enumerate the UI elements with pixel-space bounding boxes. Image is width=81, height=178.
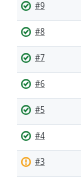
staticText: #6: [35, 78, 45, 89]
staticText: #7: [35, 52, 45, 63]
button[interactable]: #9: [0, 0, 81, 21]
staticText: #5: [35, 104, 45, 115]
button[interactable]: #6: [0, 73, 81, 99]
button[interactable]: #4: [0, 125, 81, 151]
staticText: #3: [35, 156, 45, 167]
staticText: #8: [35, 26, 45, 37]
button[interactable]: #5: [0, 99, 81, 125]
button[interactable]: #3: [0, 151, 81, 177]
button[interactable]: #7: [0, 47, 81, 73]
staticText: #9: [35, 0, 45, 11]
button[interactable]: #8: [0, 21, 81, 47]
staticText: #4: [35, 130, 45, 141]
